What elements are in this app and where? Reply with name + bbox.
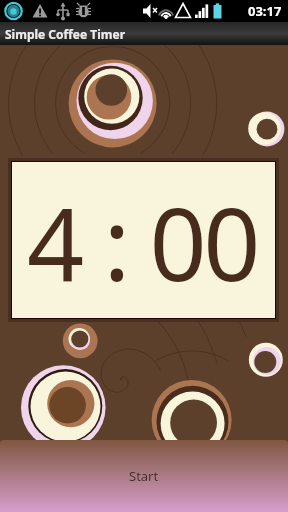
staticText: 4 : 00 <box>27 174 257 310</box>
staticText: 03:17 <box>248 2 282 20</box>
staticText: Start <box>129 467 159 485</box>
staticText: Simple Coffee Timer <box>5 26 126 42</box>
button[interactable]: Start <box>0 440 288 512</box>
